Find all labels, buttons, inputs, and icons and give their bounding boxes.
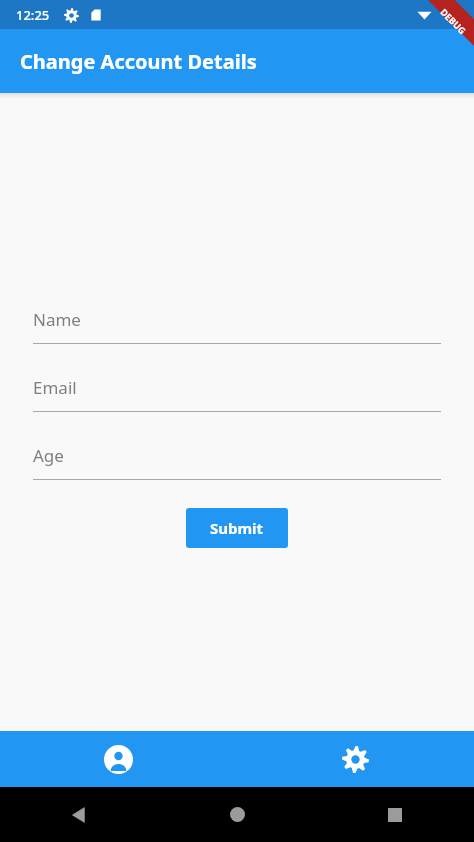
staticText: Email — [33, 376, 77, 399]
button[interactable]: Account — [0, 731, 237, 787]
staticText: Submit — [210, 518, 264, 538]
staticText: 12:25 — [16, 6, 50, 24]
button[interactable]: Settings — [237, 731, 474, 787]
staticText: Name — [33, 308, 81, 331]
button[interactable]: Age — [33, 432, 441, 500]
staticText: Age — [33, 444, 64, 467]
button[interactable]: Submit — [186, 508, 288, 548]
staticText: DEBUG — [438, 6, 469, 36]
button[interactable]: Email — [33, 364, 441, 432]
button[interactable]: Name — [33, 296, 441, 364]
staticText: Change Account Details — [20, 48, 257, 75]
